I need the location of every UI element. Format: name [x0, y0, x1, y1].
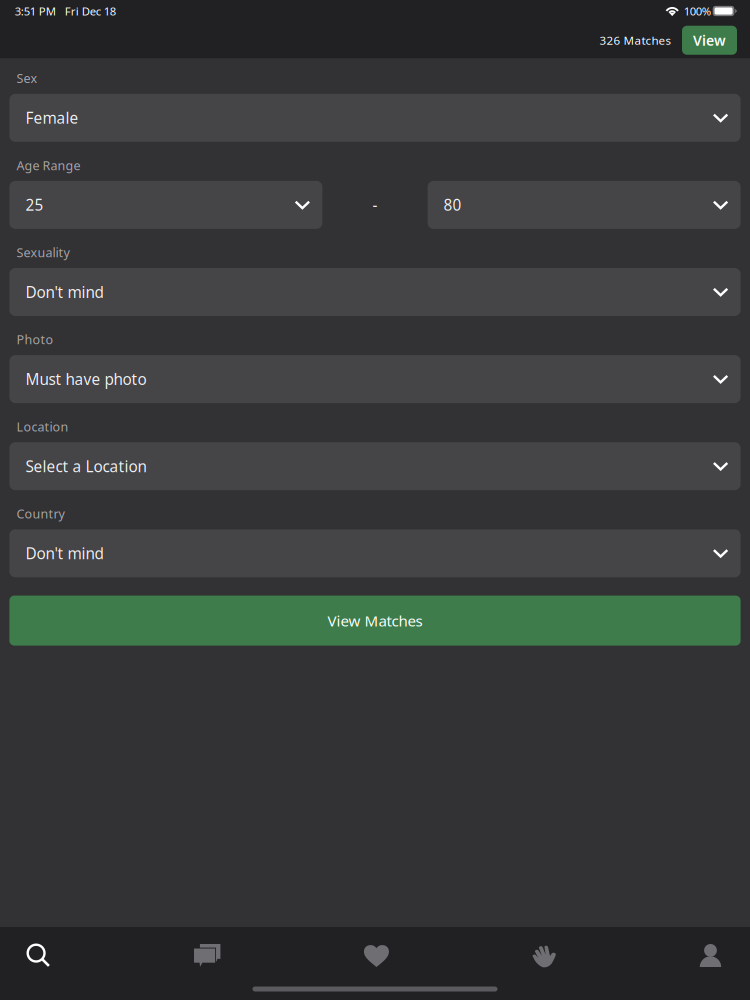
button[interactable]: Search — [26, 943, 50, 967]
staticText: 80 — [444, 194, 462, 215]
staticText: 326 Matches — [600, 32, 672, 48]
button[interactable]: Must have photo — [9, 355, 741, 403]
button[interactable]: Waves — [532, 944, 556, 967]
staticText: 100% — [684, 3, 711, 19]
button[interactable]: View — [682, 26, 737, 55]
button[interactable]: Profile — [699, 944, 721, 967]
button[interactable]: Likes — [364, 944, 389, 967]
staticText: Sex — [16, 70, 37, 87]
staticText: 25 — [25, 194, 43, 215]
staticText: Sexuality — [16, 244, 69, 261]
staticText: Select a Location — [25, 456, 146, 477]
button[interactable]: 25 — [9, 181, 322, 229]
button[interactable]: Don't mind — [9, 268, 741, 316]
staticText: Don't mind — [25, 282, 103, 302]
staticText: Don't mind — [25, 543, 103, 564]
staticText: Must have photo — [25, 369, 146, 390]
staticText: Fri Dec 18 — [65, 3, 116, 19]
staticText: Location — [16, 418, 68, 435]
staticText: View — [693, 31, 726, 50]
staticText: Photo — [16, 331, 53, 348]
button[interactable]: Select a Location — [9, 442, 741, 490]
staticText: View Matches — [327, 610, 422, 631]
button[interactable]: Female — [9, 94, 741, 142]
staticText: Country — [16, 505, 64, 522]
staticText: - — [372, 194, 377, 215]
button[interactable]: Don't mind — [9, 529, 741, 577]
button[interactable]: View Matches — [9, 596, 741, 646]
staticText: Female — [25, 107, 78, 128]
staticText: 3:51 PM — [15, 3, 56, 19]
button[interactable]: 80 — [428, 181, 741, 229]
staticText: Age Range — [16, 157, 80, 174]
button[interactable]: Messages — [194, 944, 220, 967]
